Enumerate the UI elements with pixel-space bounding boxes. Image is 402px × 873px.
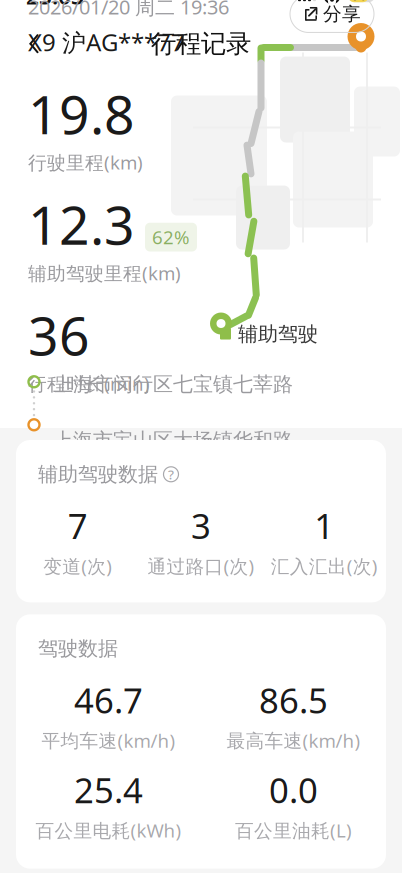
staticText: 分享 — [323, 2, 361, 25]
staticText: 百公里油耗(L) — [235, 818, 352, 843]
staticText: 上海市宝山区大场镇华和路 — [53, 428, 293, 453]
staticText: 25.4 — [74, 767, 143, 813]
staticText: 7 — [68, 503, 88, 549]
staticText: 行驶里程(km) — [28, 150, 143, 175]
staticText: 辅助驾驶 — [238, 322, 318, 346]
staticText: 86.5 — [259, 677, 328, 723]
staticText: 百公里电耗(kWh) — [35, 818, 181, 843]
staticText: 辅助驾驶里程(km) — [28, 260, 181, 285]
staticText: 36 — [28, 299, 90, 370]
staticText: 驾驶数据 — [38, 636, 118, 661]
staticText: 通过路口(次) — [147, 554, 254, 578]
staticText: 19.8 — [28, 78, 135, 149]
staticText: 汇入汇出(次) — [271, 554, 378, 578]
staticText: 最高车速(km/h) — [226, 728, 360, 753]
staticText: 3 — [191, 503, 211, 549]
staticText: 23:03 — [26, 0, 84, 11]
staticText: 辅助驾驶数据 — [38, 462, 158, 487]
button[interactable]: 分享 — [290, 0, 374, 32]
staticText: 行程记录 — [151, 28, 251, 59]
staticText: 平均车速(km/h) — [41, 728, 175, 753]
staticText: X9 沪AG***77 — [28, 26, 185, 58]
staticText: ? — [168, 465, 174, 483]
staticText: 0.0 — [269, 767, 318, 813]
staticText: 1 — [314, 503, 334, 549]
staticText: 上海市闵行区七宝镇七莘路 — [53, 372, 293, 397]
staticText: 2026/01/20 周二 19:36 — [28, 0, 229, 20]
staticText: 变道(次) — [43, 554, 112, 578]
staticText: 行程时长(min) — [28, 371, 150, 396]
button[interactable]: 辅助驾驶数据 — [38, 462, 179, 487]
staticText: 76 — [352, 0, 366, 4]
staticText: 46.7 — [74, 677, 143, 723]
staticText: 12.3 — [28, 189, 135, 259]
staticText: 62% — [152, 225, 190, 249]
button[interactable]: 返回 — [14, 24, 54, 64]
